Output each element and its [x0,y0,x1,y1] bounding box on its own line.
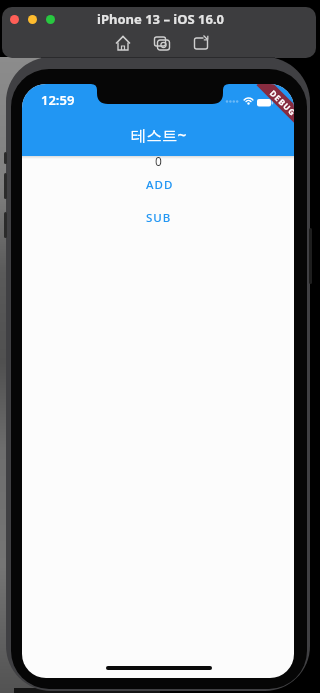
button[interactable]: SUB [109,207,209,228]
staticText: ADD [146,177,174,193]
button[interactable] [10,15,19,24]
staticText: iPhone 13 – iOS 16.0 [97,10,224,28]
staticText: 테스트~ [131,124,187,145]
staticText: 12:59 [41,91,75,109]
button[interactable]: ADD [110,175,210,195]
staticText: SUB [146,210,172,226]
button[interactable] [46,15,55,24]
staticText: 0 [155,153,162,169]
staticText: DEBUG [268,87,294,118]
button[interactable]: 테스트~ [84,123,234,146]
button[interactable] [28,15,37,24]
